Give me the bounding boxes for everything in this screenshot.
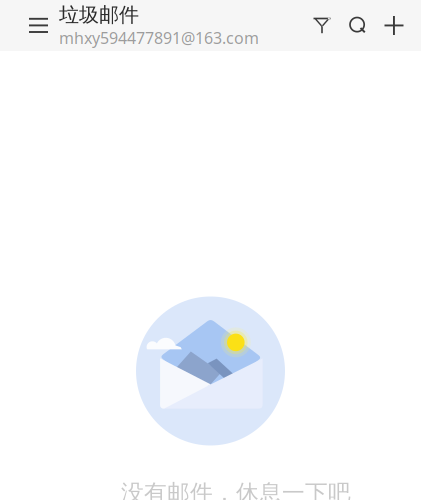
button[interactable]: Search — [340, 0, 376, 51]
button[interactable]: Menu — [20, 0, 57, 51]
staticText: mhxy594477891@163.com — [59, 27, 259, 48]
button[interactable]: Filter — [304, 0, 340, 51]
staticText: 没有邮件，休息一下吧 — [121, 479, 351, 500]
staticText: 垃圾邮件 — [59, 3, 139, 27]
button[interactable]: Compose — [376, 0, 412, 51]
